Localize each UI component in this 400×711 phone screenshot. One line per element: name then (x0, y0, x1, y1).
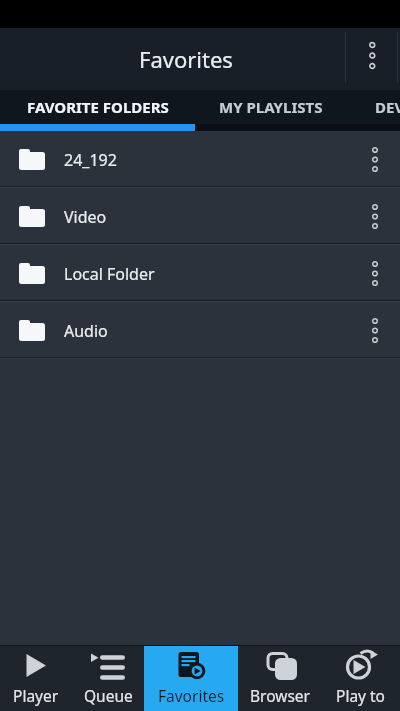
staticText: Favorites (158, 685, 225, 706)
staticText: Local Folder (64, 263, 155, 285)
staticText: Browser (250, 685, 310, 706)
staticText: Video (64, 206, 107, 228)
staticText: Favorites (139, 44, 233, 74)
button[interactable]: FAVORITE FOLDERS (0, 90, 195, 124)
button[interactable]: Player (0, 646, 72, 711)
button[interactable]: Local Folder (0, 245, 400, 302)
button[interactable]: Browser (238, 646, 321, 711)
button[interactable]: Queue (72, 646, 144, 711)
button[interactable]: Play to (321, 646, 400, 711)
button[interactable]: DEVICES (353, 90, 400, 124)
staticText: Play to (336, 685, 385, 706)
staticText: Audio (64, 320, 108, 342)
button[interactable]: Favorites (144, 646, 238, 711)
button[interactable]: 24_192 (0, 131, 400, 188)
staticText: Player (13, 685, 59, 706)
staticText: DEVICES (375, 97, 400, 117)
staticText: Queue (84, 685, 133, 706)
staticText: MY PLAYLISTS (219, 97, 323, 117)
button[interactable]: MY PLAYLISTS (195, 90, 353, 124)
staticText: FAVORITE FOLDERS (27, 97, 169, 117)
button[interactable]: Video (0, 188, 400, 245)
button[interactable]: Audio (0, 302, 400, 359)
button[interactable] (348, 28, 400, 90)
staticText: 24_192 (64, 149, 117, 171)
